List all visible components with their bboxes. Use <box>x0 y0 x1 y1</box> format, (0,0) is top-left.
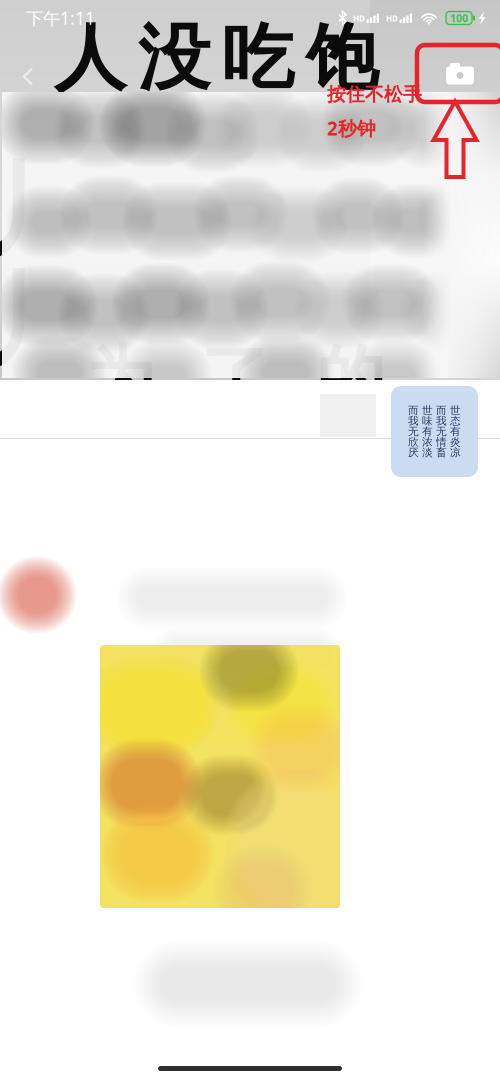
staticText: 按住不松手 <box>327 83 422 106</box>
staticText: 淡 <box>422 446 433 459</box>
staticText: 浓 <box>422 435 433 448</box>
staticText: 态 <box>450 414 461 427</box>
staticText: 凉 <box>450 446 461 459</box>
staticText: 的 <box>316 336 385 421</box>
staticText: 有 <box>422 425 433 438</box>
staticText: 丿 <box>0 150 83 271</box>
staticText: 下午1:11 <box>26 6 95 29</box>
button[interactable]: Camera <box>417 45 500 102</box>
staticText: 味 <box>422 414 433 427</box>
staticText: 欣 <box>408 435 419 448</box>
staticText: 世 <box>422 404 433 417</box>
staticText: 而 <box>436 404 447 417</box>
staticText: 世 <box>450 404 461 417</box>
staticText: 情 <box>436 435 447 448</box>
staticText: 2秒钟 <box>327 116 376 141</box>
staticText: 厌 <box>408 446 419 459</box>
staticText: 无 <box>436 425 447 438</box>
staticText: 有 <box>450 425 461 438</box>
staticText: 了 <box>201 336 270 421</box>
staticText: 100 <box>450 11 468 25</box>
staticText: 吃 <box>222 14 294 102</box>
button[interactable]: Back <box>9 54 47 99</box>
staticText: HD <box>386 13 398 24</box>
staticText: 无 <box>408 425 419 438</box>
staticText: 我 <box>436 414 447 427</box>
staticText: 丿 <box>0 260 83 381</box>
staticText: 人 <box>54 14 126 102</box>
staticText: 饱 <box>306 14 378 102</box>
staticText: 我 <box>408 414 419 427</box>
staticText: 为 <box>86 336 155 421</box>
staticText: 畜 <box>436 446 447 459</box>
staticText: 炎 <box>450 435 461 448</box>
staticText: HD <box>353 13 365 24</box>
staticText: 而 <box>408 404 419 417</box>
staticText: 没 <box>138 14 210 102</box>
